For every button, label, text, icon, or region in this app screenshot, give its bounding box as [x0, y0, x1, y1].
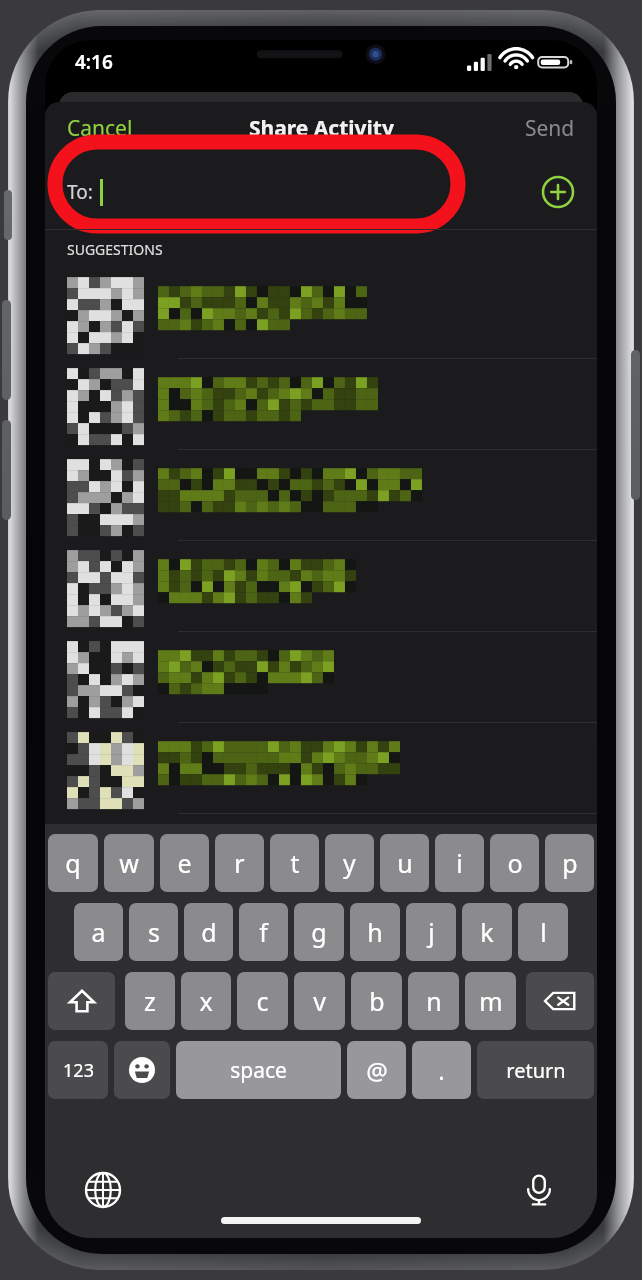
- button[interactable]: Backspace: [526, 972, 594, 1030]
- staticText: f: [259, 915, 268, 949]
- staticText: u: [397, 846, 413, 880]
- button[interactable]: f: [239, 903, 288, 961]
- staticText: z: [144, 984, 156, 1018]
- button[interactable]: k: [462, 903, 512, 961]
- staticText: 4:16: [75, 49, 113, 75]
- staticText: @: [366, 1054, 388, 1087]
- button[interactable]: u: [380, 834, 429, 892]
- staticText: o: [507, 846, 523, 880]
- button[interactable]: r: [215, 834, 264, 892]
- button[interactable]: [45, 450, 597, 541]
- staticText: .: [438, 1054, 445, 1087]
- button[interactable]: 123: [48, 1041, 108, 1099]
- button[interactable]: Dictate: [515, 1166, 563, 1214]
- button[interactable]: i: [435, 834, 484, 892]
- button[interactable]: v: [294, 972, 345, 1030]
- button[interactable]: l: [518, 903, 568, 961]
- staticText: x: [199, 984, 213, 1018]
- button[interactable]: h: [350, 903, 400, 961]
- button[interactable]: q: [48, 834, 98, 892]
- button[interactable]: p: [545, 834, 594, 892]
- button[interactable]: [45, 723, 597, 814]
- button[interactable]: e: [160, 834, 209, 892]
- staticText: SUGGESTIONS: [67, 240, 163, 259]
- staticText: return: [506, 1057, 566, 1084]
- button[interactable]: Add contact: [519, 154, 597, 230]
- staticText: v: [313, 984, 326, 1018]
- staticText: w: [119, 846, 139, 880]
- staticText: l: [540, 915, 547, 949]
- staticText: q: [65, 846, 81, 880]
- button[interactable]: z: [125, 972, 175, 1030]
- button[interactable]: g: [294, 903, 344, 961]
- button[interactable]: c: [237, 972, 288, 1030]
- button[interactable]: y: [325, 834, 374, 892]
- staticText: k: [480, 915, 494, 949]
- staticText: t: [290, 846, 300, 880]
- staticText: To:: [67, 179, 93, 205]
- button[interactable]: w: [104, 834, 154, 892]
- staticText: space: [230, 1056, 287, 1085]
- button[interactable]: Send: [503, 106, 597, 151]
- staticText: b: [369, 984, 385, 1018]
- button[interactable]: @: [347, 1041, 406, 1099]
- staticText: p: [562, 846, 578, 880]
- staticText: Share Activity: [249, 114, 394, 143]
- staticText: g: [311, 915, 327, 949]
- button[interactable]: To:: [45, 154, 519, 230]
- button[interactable]: [45, 541, 597, 632]
- button[interactable]: j: [406, 903, 456, 961]
- button[interactable]: x: [181, 972, 231, 1030]
- staticText: Cancel: [67, 114, 133, 143]
- button[interactable]: m: [465, 972, 516, 1030]
- button[interactable]: .: [412, 1041, 471, 1099]
- button[interactable]: n: [408, 972, 459, 1030]
- staticText: y: [343, 846, 356, 880]
- staticText: m: [479, 984, 503, 1018]
- staticText: n: [426, 984, 442, 1018]
- staticText: j: [428, 915, 435, 949]
- button[interactable]: t: [270, 834, 319, 892]
- staticText: 123: [63, 1058, 94, 1083]
- button[interactable]: [45, 268, 597, 359]
- button[interactable]: return: [477, 1041, 594, 1099]
- button[interactable]: Change keyboard: [79, 1166, 127, 1214]
- button[interactable]: Emoji: [114, 1041, 170, 1099]
- button[interactable]: [45, 359, 597, 450]
- staticText: c: [256, 984, 269, 1018]
- button[interactable]: b: [351, 972, 402, 1030]
- button[interactable]: s: [129, 903, 178, 961]
- staticText: h: [367, 915, 383, 949]
- button[interactable]: [45, 632, 597, 723]
- staticText: a: [91, 915, 106, 949]
- staticText: s: [148, 915, 160, 949]
- button[interactable]: d: [184, 903, 233, 961]
- staticText: Send: [525, 114, 575, 143]
- staticText: e: [177, 846, 192, 880]
- staticText: i: [456, 846, 463, 880]
- button[interactable]: o: [490, 834, 539, 892]
- button[interactable]: Shift: [48, 972, 115, 1030]
- button[interactable]: space: [176, 1041, 341, 1099]
- button[interactable]: a: [74, 903, 123, 961]
- button[interactable]: Cancel: [45, 106, 155, 151]
- staticText: r: [234, 846, 245, 880]
- staticText: d: [201, 915, 217, 949]
